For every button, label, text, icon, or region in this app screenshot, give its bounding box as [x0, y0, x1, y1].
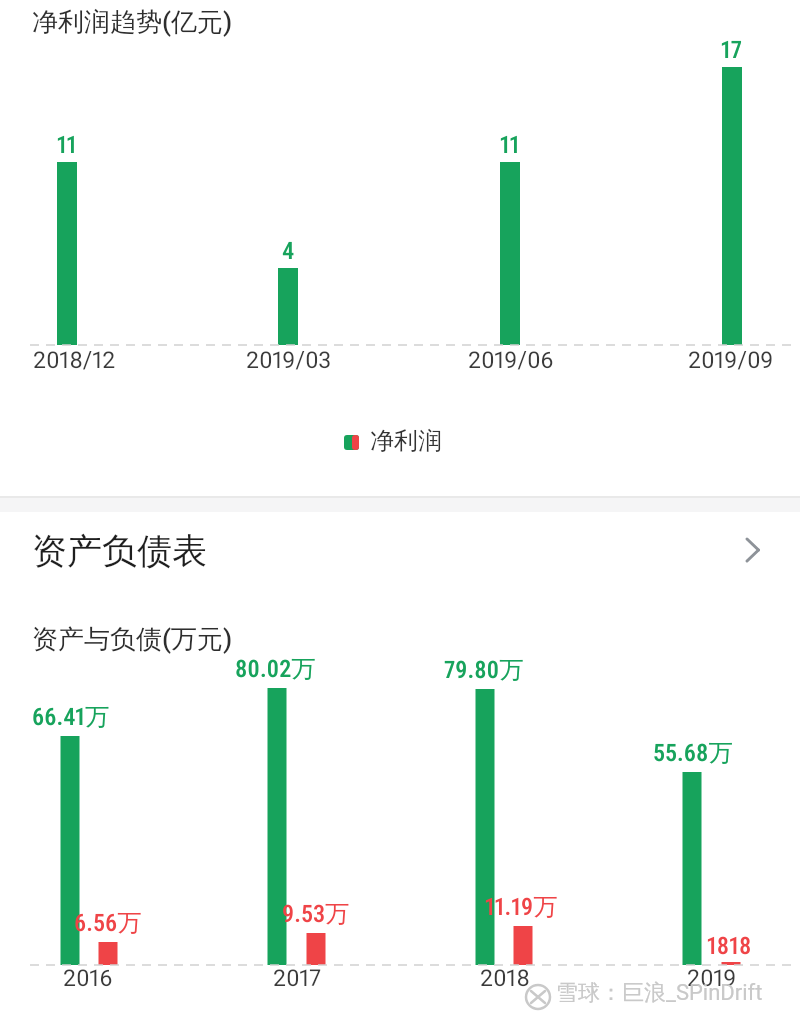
staticText: 79.80万	[444, 655, 524, 685]
staticText: 2017	[273, 965, 322, 992]
staticText: 1818	[707, 932, 752, 960]
staticText: 17	[721, 36, 743, 64]
staticText: 11.19万	[485, 892, 558, 922]
staticText: 净利润趋势(亿元)	[32, 6, 233, 39]
staticText: 4	[282, 237, 295, 265]
staticText: 资产负债表	[32, 529, 207, 573]
staticText: 2019/06	[468, 347, 554, 374]
staticText: 2016	[63, 965, 113, 992]
staticText: 6.56万	[74, 908, 142, 938]
staticText: 净利润	[370, 426, 442, 456]
staticText: 11	[500, 131, 520, 159]
staticText: 2018/12	[33, 347, 116, 374]
staticText: 80.02万	[235, 654, 316, 684]
staticText: 9.53万	[282, 899, 350, 929]
staticText: 2019/09	[688, 347, 774, 374]
staticText: 2019/03	[246, 347, 332, 374]
staticText: 雪球：巨浪_SPinDrift	[556, 979, 763, 1007]
staticText: 2019	[687, 965, 737, 992]
staticText: 11	[57, 131, 77, 159]
button[interactable]: 资产负债表	[0, 518, 800, 578]
staticText: 66.41万	[32, 702, 110, 732]
staticText: 2018	[480, 965, 530, 992]
staticText: 55.68万	[653, 738, 733, 768]
staticText: 资产与负债(万元)	[32, 623, 233, 656]
